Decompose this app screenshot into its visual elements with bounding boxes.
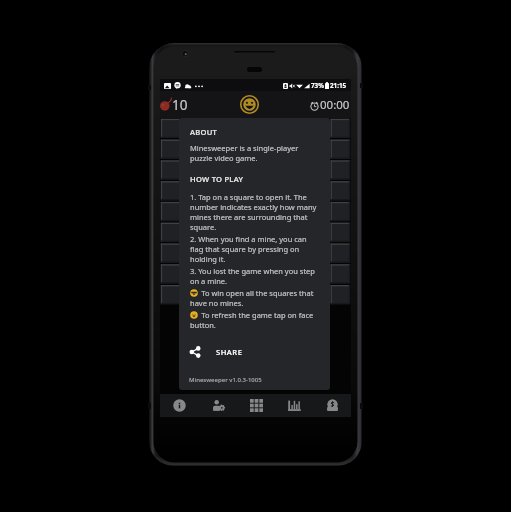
staticText: HOW TO PLAY [190,174,244,184]
staticText: To win open all the squares that have no… [190,288,321,308]
staticText: Minesweeper is a single-player puzzle vi… [190,143,321,163]
staticText: ABOUT [190,127,218,137]
staticText: 10 [172,96,188,114]
staticText: 3. You lost the game when you step on a … [190,266,321,286]
button[interactable]: SHARE [179,339,330,365]
button[interactable]: About [160,394,199,417]
button[interactable]: Board [237,394,275,417]
button[interactable]: Settings [199,394,237,417]
staticText: SHARE [216,347,243,357]
staticText: 00:00 [320,97,350,113]
button[interactable]: Statistics [275,394,313,417]
button[interactable]: Store [313,394,351,417]
staticText: Minesweeper v1.0.3-1005 [189,376,262,384]
staticText: 1. Tap on a square to open it. The numbe… [190,192,321,232]
staticText: 2. When you find a mine, you can flag th… [190,234,321,264]
button[interactable]: Restart game [238,93,261,116]
staticText: 21:15 [330,81,347,90]
staticText: To refresh the game tap on face button. [190,310,321,330]
staticText: 73% [311,81,324,90]
